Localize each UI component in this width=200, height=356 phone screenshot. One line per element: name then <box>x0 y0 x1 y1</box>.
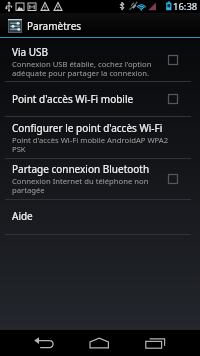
staticText: Connexion Internet du téléphone non part… <box>12 176 170 195</box>
button[interactable]: Configurer le point d'accès Wi-Fi <box>0 117 200 158</box>
staticText: Via USB <box>12 45 49 59</box>
staticText: Point d'accès Wi-Fi mobile AndroidAP WPA… <box>12 135 170 154</box>
button[interactable]: Toggle Via USB <box>165 52 181 68</box>
button[interactable]: Aide <box>0 200 200 234</box>
staticText: Partage connexion Bluetooth <box>12 162 150 176</box>
staticText: Connexion USB établie, cochez l'option a… <box>12 59 170 78</box>
button[interactable]: Point d'accès Wi-Fi mobile <box>0 82 200 116</box>
staticText: Point d'accès Wi-Fi mobile <box>12 92 134 106</box>
button[interactable]: Home <box>80 330 120 356</box>
staticText: 16:38 <box>173 0 198 13</box>
button[interactable]: Toggle Partage connexion Bluetooth <box>165 171 181 187</box>
button[interactable]: Back <box>24 330 64 356</box>
button[interactable]: Via USB <box>0 38 200 81</box>
button[interactable]: Recent apps <box>136 330 176 356</box>
button[interactable]: Toggle Point d'accès Wi-Fi mobile <box>165 91 181 107</box>
button[interactable]: Partage connexion Bluetooth <box>0 159 200 199</box>
button[interactable]: Settings app icon <box>8 19 22 33</box>
staticText: Paramètres <box>27 19 82 33</box>
staticText: Configurer le point d'accès Wi-Fi <box>12 121 163 135</box>
staticText: Aide <box>12 209 33 223</box>
